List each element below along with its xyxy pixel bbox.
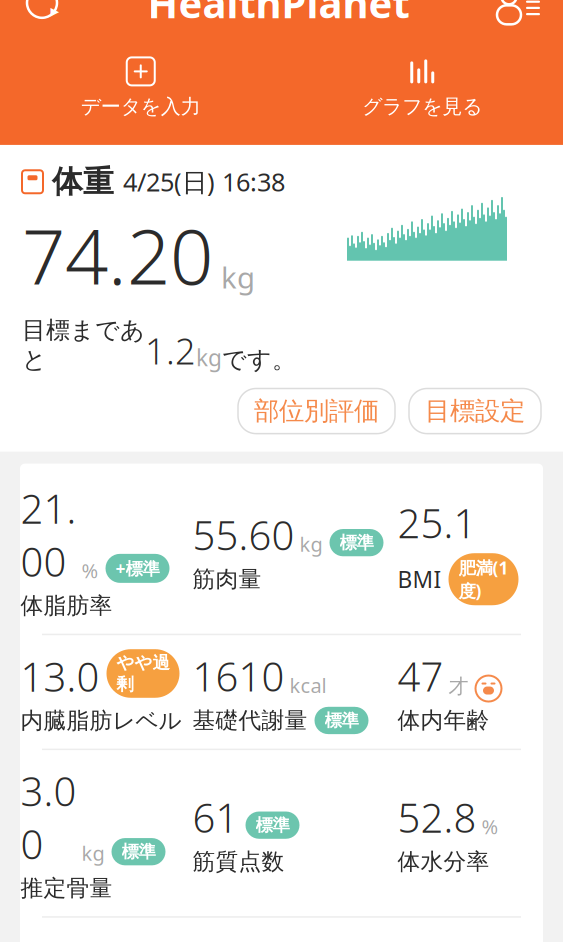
staticText: 4/25(日) 16:38	[123, 165, 285, 199]
button[interactable]: 目標設定	[409, 388, 541, 434]
staticText: 内臓脂肪レベル	[20, 707, 181, 735]
staticText: 3.00	[20, 764, 76, 870]
staticText: 才	[448, 674, 468, 699]
button[interactable]: 部位別評価	[238, 388, 395, 434]
staticText: 74.20	[22, 205, 213, 305]
staticText: 標準	[121, 841, 155, 862]
button[interactable]: Profile	[495, 0, 541, 23]
staticText: ▸	[50, 1, 59, 21]
staticText: 標準	[339, 532, 373, 553]
staticText: 21.00	[20, 482, 76, 588]
staticText: 肥満(1度)	[458, 556, 508, 602]
staticText: やや過剰	[116, 652, 169, 695]
staticText: kg	[221, 258, 255, 297]
staticText: 体内年齢	[397, 706, 489, 734]
staticText: 部位別評価	[254, 395, 379, 427]
button[interactable]: グラフを見る	[281, 49, 563, 127]
staticText: HealthPlanet	[147, 0, 409, 29]
staticText: BMI	[397, 564, 441, 594]
staticText: 推定骨量	[20, 874, 112, 902]
staticText: 目標設定	[425, 395, 525, 427]
staticText: グラフを見る	[362, 94, 482, 119]
button[interactable]: Sync	[22, 0, 62, 23]
staticText: 1.2	[145, 327, 196, 374]
staticText: 標準	[255, 814, 289, 836]
staticText: %	[81, 557, 98, 584]
staticText: 25.1	[397, 496, 476, 549]
staticText: です。	[222, 345, 296, 374]
staticText: %	[481, 813, 498, 840]
staticText: 13.0	[20, 650, 99, 703]
staticText: 体重	[52, 163, 114, 201]
staticText: kg	[81, 840, 104, 866]
staticText: 体水分率	[397, 848, 489, 876]
staticText: 47	[397, 649, 443, 702]
staticText: データを入力	[81, 94, 201, 119]
staticText: 目標まであと	[22, 315, 145, 374]
staticText: kg	[299, 531, 322, 557]
staticText: 標準	[324, 710, 358, 731]
staticText: kg	[196, 342, 222, 372]
staticText: +標準	[115, 557, 159, 580]
staticText: kcal	[289, 672, 326, 699]
staticText: 体脂肪率	[20, 592, 112, 620]
staticText: 筋肉量	[192, 565, 261, 593]
staticText: 52.8	[397, 791, 476, 844]
button[interactable]: データを入力	[0, 49, 281, 127]
staticText: 1610	[192, 649, 284, 702]
staticText: 61	[192, 791, 238, 844]
staticText: 55.60	[192, 508, 294, 561]
staticText: 筋質点数	[192, 848, 284, 876]
staticText: 基礎代謝量	[192, 706, 307, 734]
